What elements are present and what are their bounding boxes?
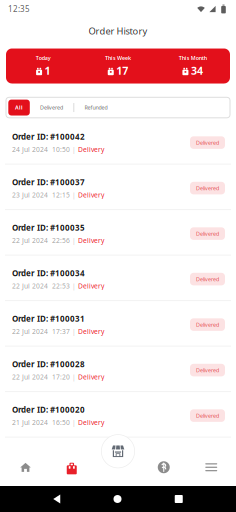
staticText: Order ID: #100028 — [12, 359, 85, 369]
button[interactable]: Refunded — [74, 100, 118, 115]
button[interactable]: Order ID: #100020 — [0, 392, 236, 438]
staticText: | — [72, 236, 78, 245]
button[interactable]: Order ID: #100037 — [0, 165, 236, 210]
button[interactable]: Order ID: #100042 — [0, 119, 236, 165]
button[interactable]: Order ID: #100028 — [0, 347, 236, 392]
staticText: | — [72, 145, 78, 154]
staticText: | — [72, 327, 78, 336]
button[interactable]: Store — [101, 434, 135, 468]
staticText: Delivered — [196, 185, 219, 192]
staticText: 1 — [45, 63, 51, 78]
staticText: 21 Jul 2024 16:50 — [12, 418, 72, 427]
staticText: Delivered — [196, 412, 219, 419]
staticText: Delivered — [40, 104, 63, 111]
staticText: Delivery — [78, 281, 104, 290]
button[interactable]: Menu — [186, 438, 236, 486]
staticText: 12:35 — [8, 4, 30, 14]
staticText: | — [72, 281, 78, 290]
staticText: This Week — [105, 54, 131, 61]
staticText: Delivery — [78, 236, 104, 245]
staticText: 17 — [116, 63, 128, 78]
staticText: Delivery — [78, 145, 104, 154]
staticText: 34 — [191, 63, 203, 78]
staticText: Order ID: #100034 — [12, 268, 85, 278]
button[interactable]: Order ID: #100034 — [0, 256, 236, 301]
button[interactable]: Home — [0, 438, 51, 486]
staticText: Delivered — [196, 230, 219, 237]
button[interactable]: Order ID: #100035 — [0, 210, 236, 256]
button[interactable]: Orders — [51, 438, 92, 486]
staticText: Order ID: #100037 — [12, 177, 85, 187]
button[interactable]: Order ID: #100031 — [0, 301, 236, 347]
staticText: | — [72, 372, 78, 381]
staticText: This Month — [179, 54, 207, 61]
staticText: 22 Jul 2024 17:37 — [12, 327, 72, 336]
staticText: Delivery — [78, 418, 104, 427]
staticText: Delivered — [196, 321, 219, 328]
staticText: Delivered — [196, 276, 219, 283]
button[interactable]: All — [8, 100, 30, 115]
staticText: | — [72, 418, 78, 427]
staticText: All — [15, 104, 23, 111]
staticText: Order ID: #100031 — [12, 313, 85, 324]
staticText: Order ID: #100042 — [12, 131, 85, 142]
staticText: 23 Jul 2024 12:15 — [12, 190, 72, 199]
staticText: Delivered — [196, 139, 219, 146]
button[interactable]: Payments — [141, 438, 186, 486]
staticText: Order ID: #100035 — [12, 222, 85, 233]
staticText: Delivery — [78, 327, 104, 336]
staticText: 22 Jul 2024 17:20 — [12, 372, 72, 381]
staticText: Delivery — [78, 190, 104, 199]
staticText: 24 Jul 2024 10:50 — [12, 145, 72, 154]
staticText: Order ID: #100020 — [12, 404, 85, 415]
staticText: | — [72, 190, 78, 199]
staticText: Today — [36, 54, 51, 61]
staticText: Delivery — [78, 372, 104, 381]
staticText: Refunded — [84, 104, 107, 111]
staticText: Order History — [88, 25, 147, 37]
staticText: 22 Jul 2024 22:56 — [12, 236, 72, 245]
staticText: Delivered — [196, 367, 219, 374]
staticText: 22 Jul 2024 22:53 — [12, 281, 72, 290]
button[interactable]: Delivered — [30, 100, 73, 115]
